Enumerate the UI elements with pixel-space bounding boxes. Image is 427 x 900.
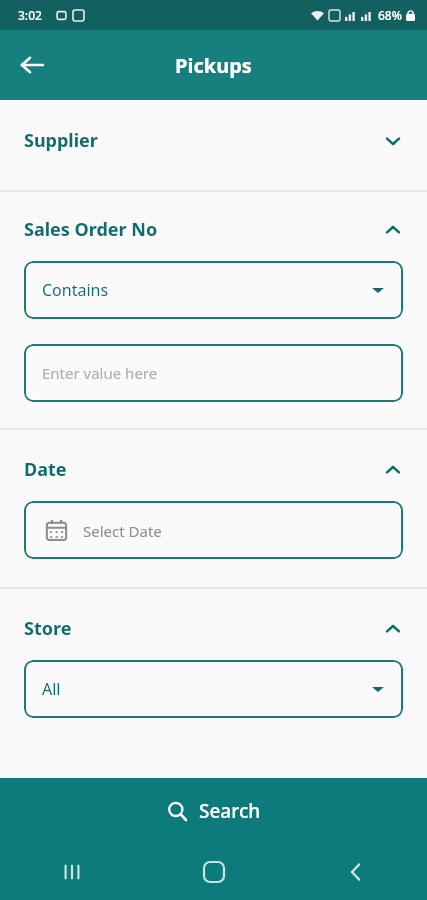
button[interactable]: Recents: [0, 844, 143, 900]
button[interactable]: Back: [285, 844, 427, 900]
staticText: Pickups: [175, 52, 252, 79]
staticText: Search: [199, 798, 261, 824]
staticText: Date: [24, 457, 67, 482]
button[interactable]: Enter value here: [24, 344, 403, 402]
button[interactable]: Contains: [24, 261, 403, 319]
staticText: Sales Order No: [24, 217, 158, 242]
staticText: 68%: [378, 7, 402, 23]
staticText: Store: [24, 616, 72, 641]
button[interactable]: Home: [143, 844, 285, 900]
button[interactable]: Sales Order No: [0, 202, 427, 257]
button[interactable]: Back: [8, 41, 56, 89]
staticText: Supplier: [24, 128, 98, 153]
staticText: All: [42, 678, 61, 700]
button[interactable]: All: [24, 660, 403, 718]
button[interactable]: Store: [0, 601, 427, 656]
staticText: Contains: [42, 279, 109, 301]
staticText: Enter value here: [42, 363, 158, 383]
staticText: Select Date: [83, 521, 162, 541]
button[interactable]: Date: [0, 442, 427, 497]
button[interactable]: Select Date: [24, 501, 403, 559]
staticText: 3:02: [18, 7, 42, 23]
button[interactable]: Supplier: [0, 113, 427, 168]
button[interactable]: Search: [0, 778, 427, 844]
